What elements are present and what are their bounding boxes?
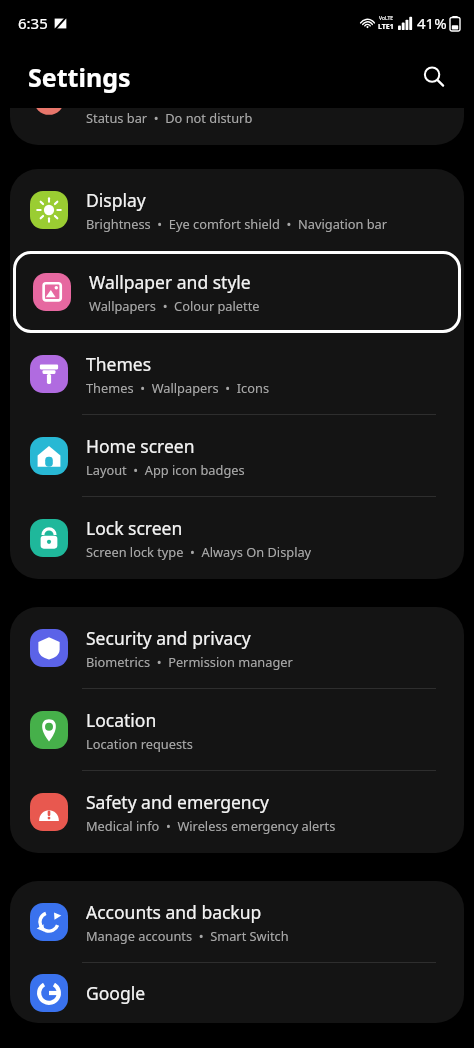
staticText: Lock screen xyxy=(86,516,183,540)
staticText: Layout • App icon badges xyxy=(86,461,245,478)
button[interactable]: Security and privacy xyxy=(10,607,464,689)
button[interactable]: Status bar • Do not disturb xyxy=(10,108,464,145)
button[interactable]: Safety and emergency xyxy=(10,771,464,853)
button[interactable]: Wallpaper and style xyxy=(13,251,461,333)
staticText: Brightness • Eye comfort shield • Naviga… xyxy=(86,215,388,232)
staticText: Wallpapers • Colour palette xyxy=(89,297,260,314)
staticText: Themes • Wallpapers • Icons xyxy=(86,379,270,396)
staticText: LTE1 xyxy=(378,22,394,32)
staticText: VoLTE xyxy=(379,15,394,22)
staticText: Status bar • Do not disturb xyxy=(86,109,253,126)
staticText: Location xyxy=(86,708,157,732)
staticText: Display xyxy=(86,188,146,212)
button[interactable]: Location xyxy=(10,689,464,771)
staticText: Home screen xyxy=(86,434,195,458)
button[interactable]: Home screen xyxy=(10,415,464,497)
button[interactable]: Lock screen xyxy=(10,497,464,579)
staticText: Location requests xyxy=(86,735,193,752)
staticText: Screen lock type • Always On Display xyxy=(86,543,312,560)
staticText: Settings xyxy=(28,60,131,94)
staticText: Wallpaper and style xyxy=(89,270,251,294)
staticText: 41% xyxy=(417,13,447,33)
staticText: Safety and emergency xyxy=(86,790,269,814)
staticText: Accounts and backup xyxy=(86,900,262,924)
button[interactable]: Search xyxy=(414,57,454,97)
button[interactable]: Accounts and backup xyxy=(10,881,464,963)
staticText: 6:35 xyxy=(18,13,48,33)
staticText: Medical info • Wireless emergency alerts xyxy=(86,817,336,834)
button[interactable]: Themes xyxy=(10,333,464,415)
button[interactable]: Display xyxy=(10,169,464,251)
staticText: Google xyxy=(86,981,146,1005)
staticText: Manage accounts • Smart Switch xyxy=(86,927,289,944)
staticText: Security and privacy xyxy=(86,626,251,650)
button[interactable]: Google xyxy=(10,963,464,1023)
staticText: Themes xyxy=(86,352,152,376)
staticText: Biometrics • Permission manager xyxy=(86,653,293,670)
